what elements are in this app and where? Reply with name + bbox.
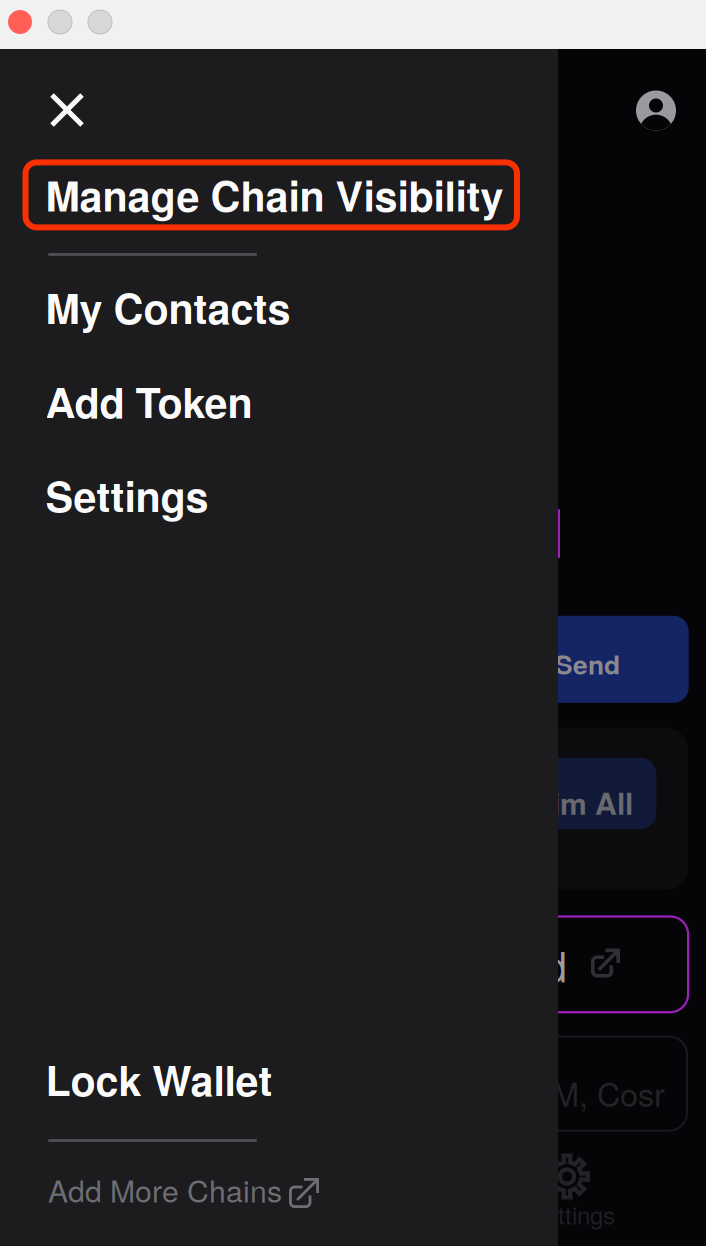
staticText: ttings [558,1197,615,1231]
button[interactable]: My Contacts [45,270,515,332]
button[interactable]: Settings [45,458,515,520]
button[interactable]: Zoom window [88,10,112,34]
staticText: Claim All [505,781,633,824]
staticText: M, Cosr [552,1069,665,1116]
staticText: Settings [45,465,208,525]
button[interactable]: Minimize window [48,10,72,34]
button[interactable]: Close menu [38,81,96,139]
button[interactable]: Claim All [436,758,656,829]
button[interactable]: Lock Wallet [45,1042,515,1104]
staticText: Add Token [45,371,252,431]
button[interactable]: d [426,916,688,1012]
staticText: Manage Chain Visibility [45,165,503,224]
button[interactable]: Settings tab [520,1149,640,1239]
button[interactable]: Close window [8,10,32,34]
button[interactable]: Account [630,84,682,136]
staticText: d [544,934,567,994]
staticText: Lock Wallet [45,1049,272,1109]
button[interactable]: Add Token [45,364,515,426]
button[interactable]: Send [448,616,689,703]
button[interactable]: Manage Chain Visibility [25,162,517,227]
staticText: My Contacts [45,277,290,337]
staticText: Send [555,645,620,683]
button[interactable]: Add More Chains [40,1157,336,1209]
staticText: Add More Chains [48,1168,282,1211]
